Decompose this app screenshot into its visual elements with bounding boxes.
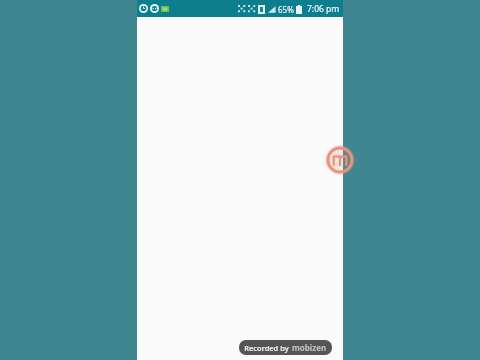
button[interactable]: Mobizen recorder	[325, 145, 355, 175]
staticText: Recorded by	[244, 343, 289, 353]
staticText: mobizen	[292, 342, 327, 353]
staticText: 65%	[278, 4, 294, 15]
staticText: 7:06 pm	[307, 3, 340, 15]
